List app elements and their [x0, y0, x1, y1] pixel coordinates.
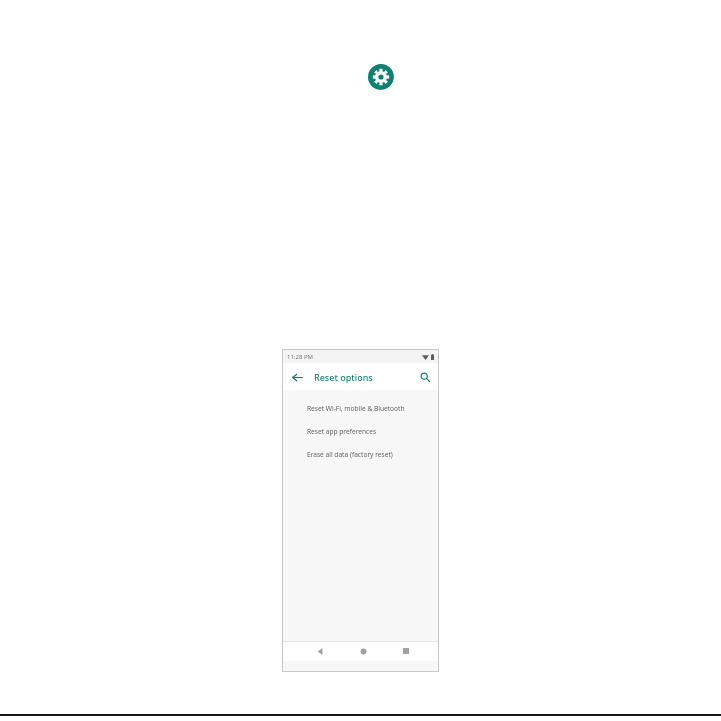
staticText: Reset options [314, 371, 373, 383]
button[interactable]: Settings [367, 63, 394, 90]
button[interactable]: Search [417, 369, 433, 385]
staticText: Erase all data (factory reset) [307, 450, 393, 459]
button[interactable]: Recent apps [397, 642, 415, 660]
button[interactable]: Back [311, 642, 329, 660]
button[interactable]: Erase all data (factory reset) [283, 443, 438, 466]
button[interactable]: Back [289, 369, 305, 385]
staticText: Reset app preferences [307, 427, 377, 436]
button[interactable]: Reset app preferences [283, 420, 438, 443]
staticText: Reset Wi-Fi, mobile & Bluetooth [307, 404, 405, 413]
button[interactable]: Home [354, 642, 372, 660]
staticText: 11:28 PM [287, 353, 313, 361]
button[interactable]: Reset Wi-Fi, mobile & Bluetooth [283, 397, 438, 420]
